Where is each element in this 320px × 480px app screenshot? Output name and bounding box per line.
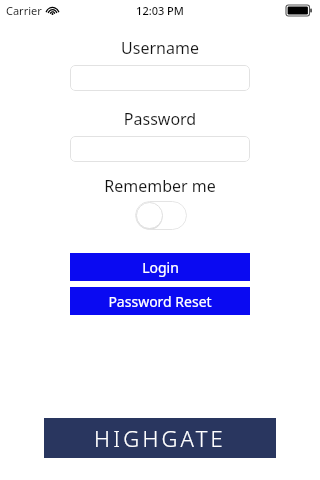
button[interactable]: Remember me toggle, off xyxy=(135,201,187,230)
staticText: Login xyxy=(142,258,179,277)
staticText: HIGHGATE xyxy=(94,423,226,453)
staticText: Carrier xyxy=(6,3,42,18)
staticText: 12:03 PM xyxy=(0,3,320,18)
staticText: Remember me xyxy=(0,175,320,197)
button[interactable]: Password Reset xyxy=(70,287,250,315)
button[interactable]: Login xyxy=(70,253,250,281)
staticText: Username xyxy=(0,37,320,59)
staticText: Password Reset xyxy=(108,292,212,311)
button[interactable]: Password input xyxy=(70,136,250,162)
staticText: Password xyxy=(0,108,320,130)
button[interactable]: Username input xyxy=(70,65,250,91)
